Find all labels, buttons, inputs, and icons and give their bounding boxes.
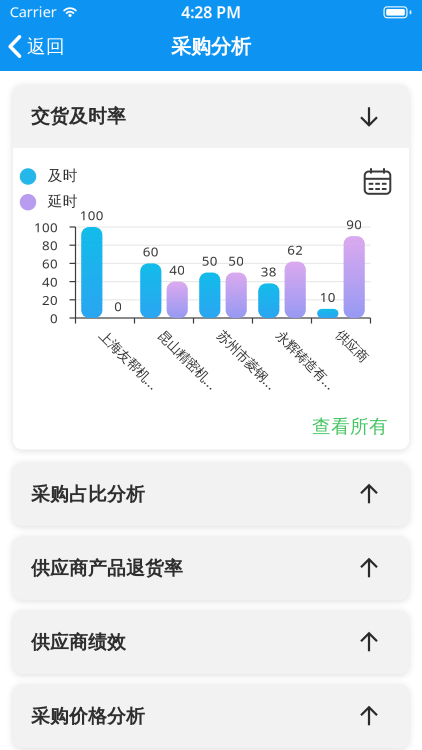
- button[interactable]: 供应商绩效: [13, 610, 409, 674]
- button[interactable]: 查看所有: [308, 411, 392, 442]
- staticText: 62: [287, 241, 303, 258]
- staticText: 永辉铸造有...: [285, 326, 362, 344]
- button[interactable]: 供应商产品退货率: [13, 536, 409, 600]
- staticText: 返回: [27, 35, 65, 58]
- staticText: 供应商绩效: [31, 631, 126, 654]
- staticText: 10: [320, 288, 336, 306]
- staticText: 40: [169, 261, 185, 278]
- staticText: 查看所有: [312, 415, 388, 438]
- staticText: 40: [42, 273, 58, 290]
- staticText: 60: [143, 242, 159, 260]
- staticText: 昆山精密机...: [167, 326, 244, 344]
- staticText: 采购占比分析: [31, 483, 145, 506]
- staticText: 50: [228, 252, 244, 269]
- button[interactable]: 返回: [0, 22, 76, 71]
- staticText: Carrier: [9, 2, 56, 21]
- staticText: 供应商产品退货率: [31, 557, 183, 580]
- staticText: 4:28 PM: [181, 1, 241, 23]
- button[interactable]: 交货及时率: [13, 85, 409, 147]
- staticText: 延时: [48, 192, 78, 210]
- staticText: 20: [42, 291, 58, 309]
- staticText: 100: [34, 218, 58, 236]
- staticText: 供应商: [344, 326, 383, 343]
- button[interactable]: 采购价格分析: [13, 684, 409, 748]
- staticText: 及时: [48, 167, 78, 185]
- staticText: 0: [50, 309, 58, 327]
- staticText: 采购价格分析: [31, 705, 145, 728]
- staticText: 苏州市菱钢...: [226, 326, 303, 344]
- staticText: 80: [42, 236, 58, 254]
- button[interactable]: 采购占比分析: [13, 462, 409, 526]
- staticText: 上海友帮机...: [108, 326, 185, 344]
- staticText: 60: [42, 254, 58, 272]
- staticText: 采购分析: [171, 34, 251, 59]
- staticText: 100: [80, 206, 104, 224]
- staticText: 90: [346, 215, 362, 233]
- staticText: 38: [261, 263, 277, 280]
- staticText: 交货及时率: [31, 105, 126, 128]
- button[interactable]: 选择日期: [363, 167, 391, 195]
- staticText: 50: [202, 252, 218, 269]
- staticText: 0: [114, 297, 122, 315]
